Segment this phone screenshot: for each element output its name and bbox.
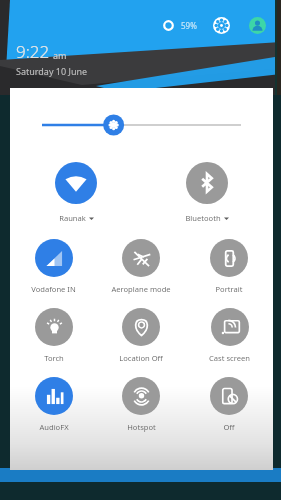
- button[interactable]: Raunak: [55, 162, 97, 223]
- button[interactable]: Off: [210, 377, 248, 432]
- staticText: Torch: [44, 353, 64, 363]
- button[interactable]: Torch: [35, 308, 73, 363]
- button[interactable]: Location Off: [119, 308, 163, 363]
- staticText: 9:22: [16, 40, 50, 63]
- staticText: Aeroplane mode: [111, 284, 171, 294]
- staticText: am: [53, 49, 67, 61]
- button[interactable]: User profile: [245, 13, 269, 37]
- staticText: Hotspot: [127, 422, 156, 432]
- button[interactable]: Brightness: [10, 110, 273, 140]
- button[interactable]: Portrait: [210, 239, 248, 294]
- staticText: Location Off: [119, 353, 163, 363]
- button[interactable]: Vodafone IN: [31, 239, 76, 294]
- button[interactable]: Settings: [209, 13, 233, 37]
- staticText: 59%: [181, 20, 197, 31]
- staticText: Raunak: [59, 213, 86, 223]
- button[interactable]: Bluetooth: [185, 162, 229, 223]
- staticText: AudioFX: [39, 422, 69, 432]
- staticText: Vodafone IN: [31, 284, 76, 294]
- staticText: Off: [223, 422, 235, 432]
- button[interactable]: Cast screen: [209, 308, 250, 363]
- button[interactable]: Battery 59 percent: [157, 14, 179, 36]
- button[interactable]: AudioFX: [35, 377, 73, 432]
- button[interactable]: Hotspot: [122, 377, 160, 432]
- staticText: Saturday 10 June: [16, 65, 88, 77]
- staticText: Cast screen: [209, 353, 250, 363]
- button[interactable]: Aeroplane mode: [111, 239, 171, 294]
- staticText: Portrait: [215, 284, 243, 294]
- staticText: Bluetooth: [185, 213, 221, 223]
